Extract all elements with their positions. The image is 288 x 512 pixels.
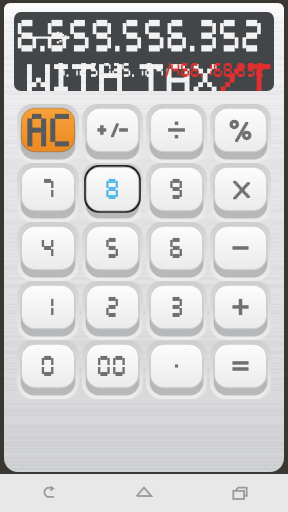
button[interactable]: 0: [17, 340, 79, 399]
button[interactable]: Recent apps: [192, 474, 288, 512]
button[interactable]: 3: [146, 281, 207, 340]
button[interactable]: +: [210, 281, 271, 340]
button[interactable]: 2: [82, 281, 143, 340]
button[interactable]: =: [210, 340, 271, 399]
button[interactable]: Home: [96, 474, 192, 512]
button[interactable]: 5: [82, 222, 143, 281]
button[interactable]: 8: [82, 163, 143, 222]
button[interactable]: 1: [17, 281, 79, 340]
button[interactable]: 6: [146, 222, 207, 281]
button[interactable]: 9: [146, 163, 207, 222]
button[interactable]: AC: [17, 104, 79, 163]
button[interactable]: +/-: [82, 104, 143, 163]
button[interactable]: X: [210, 163, 271, 222]
button[interactable]: ÷: [146, 104, 207, 163]
button[interactable]: 00: [82, 340, 143, 399]
button[interactable]: Back: [0, 474, 96, 512]
button[interactable]: -: [210, 222, 271, 281]
button[interactable]: %: [210, 104, 271, 163]
button[interactable]: 4: [17, 222, 79, 281]
button[interactable]: .: [146, 340, 207, 399]
button[interactable]: 7: [17, 163, 79, 222]
